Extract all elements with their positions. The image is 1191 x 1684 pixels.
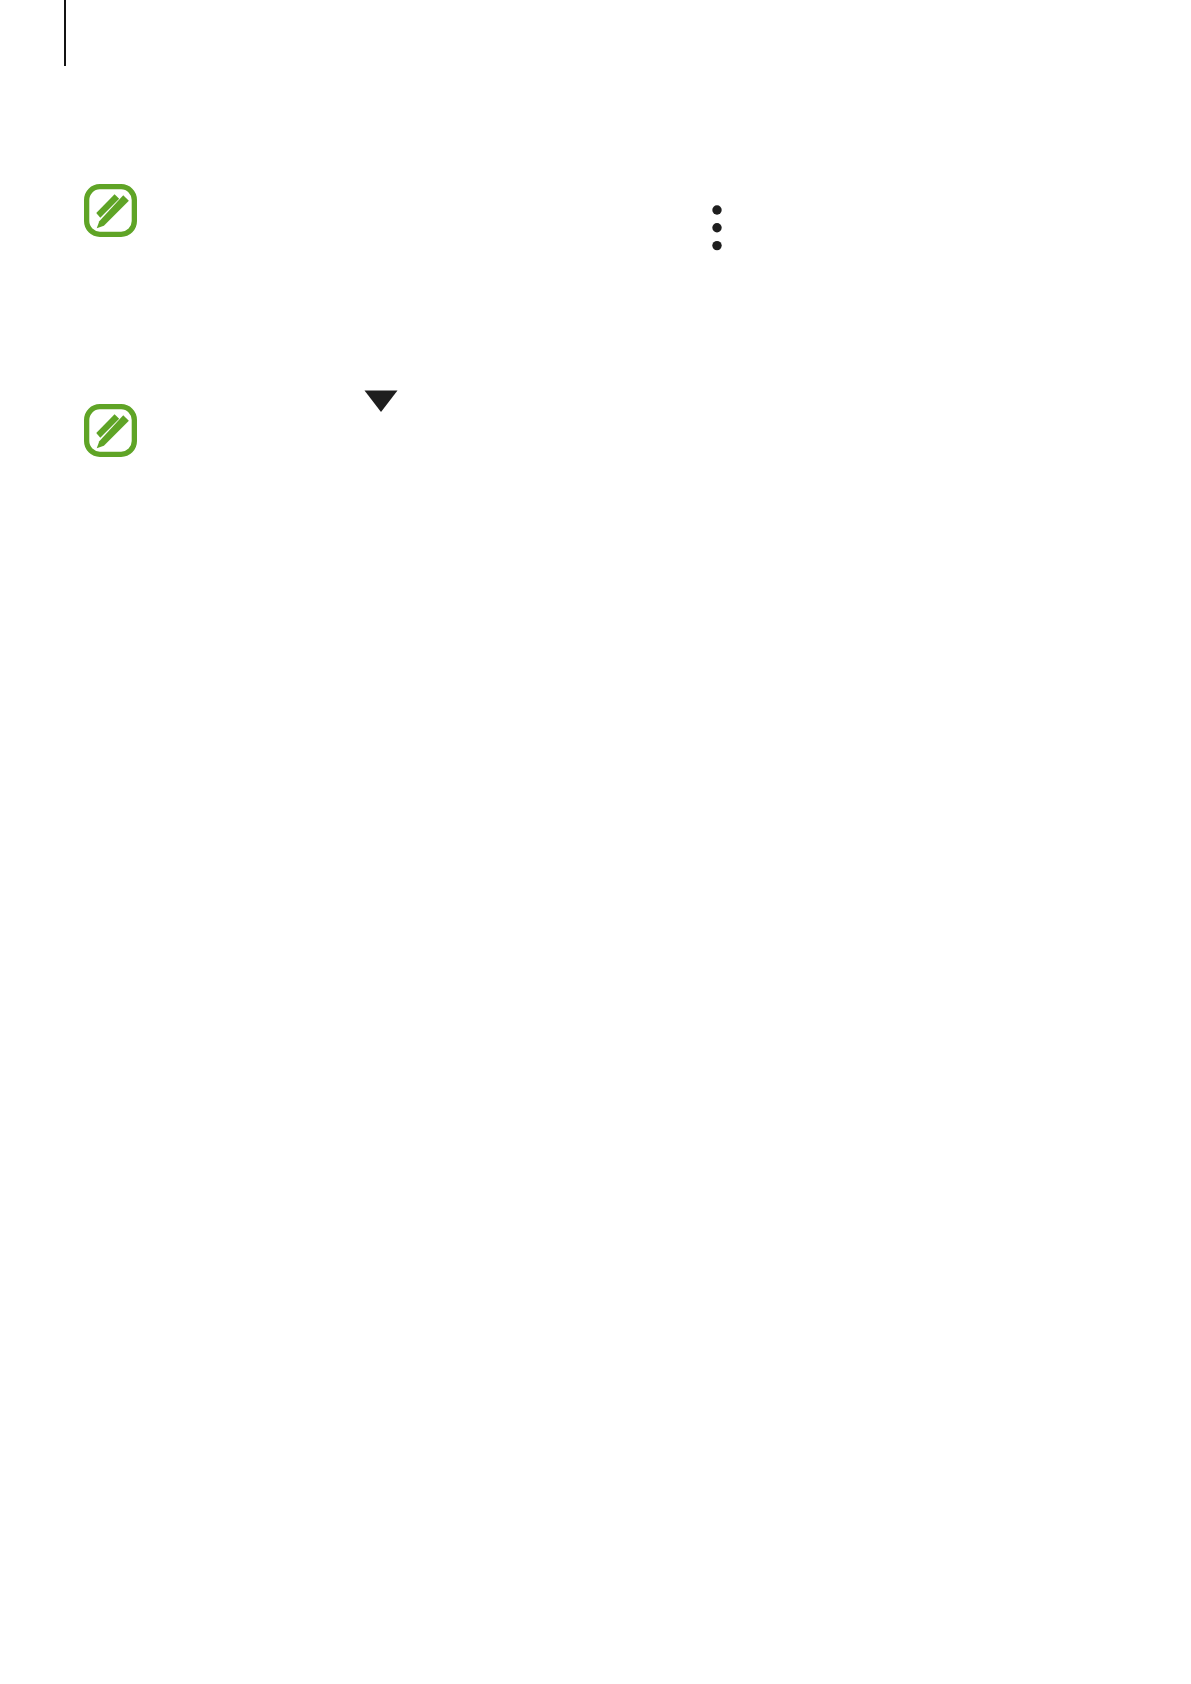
button[interactable]: More options bbox=[703, 198, 731, 256]
button[interactable]: Expand bbox=[364, 389, 398, 413]
button[interactable]: Note bbox=[84, 184, 137, 237]
button[interactable]: Note bbox=[84, 404, 137, 457]
